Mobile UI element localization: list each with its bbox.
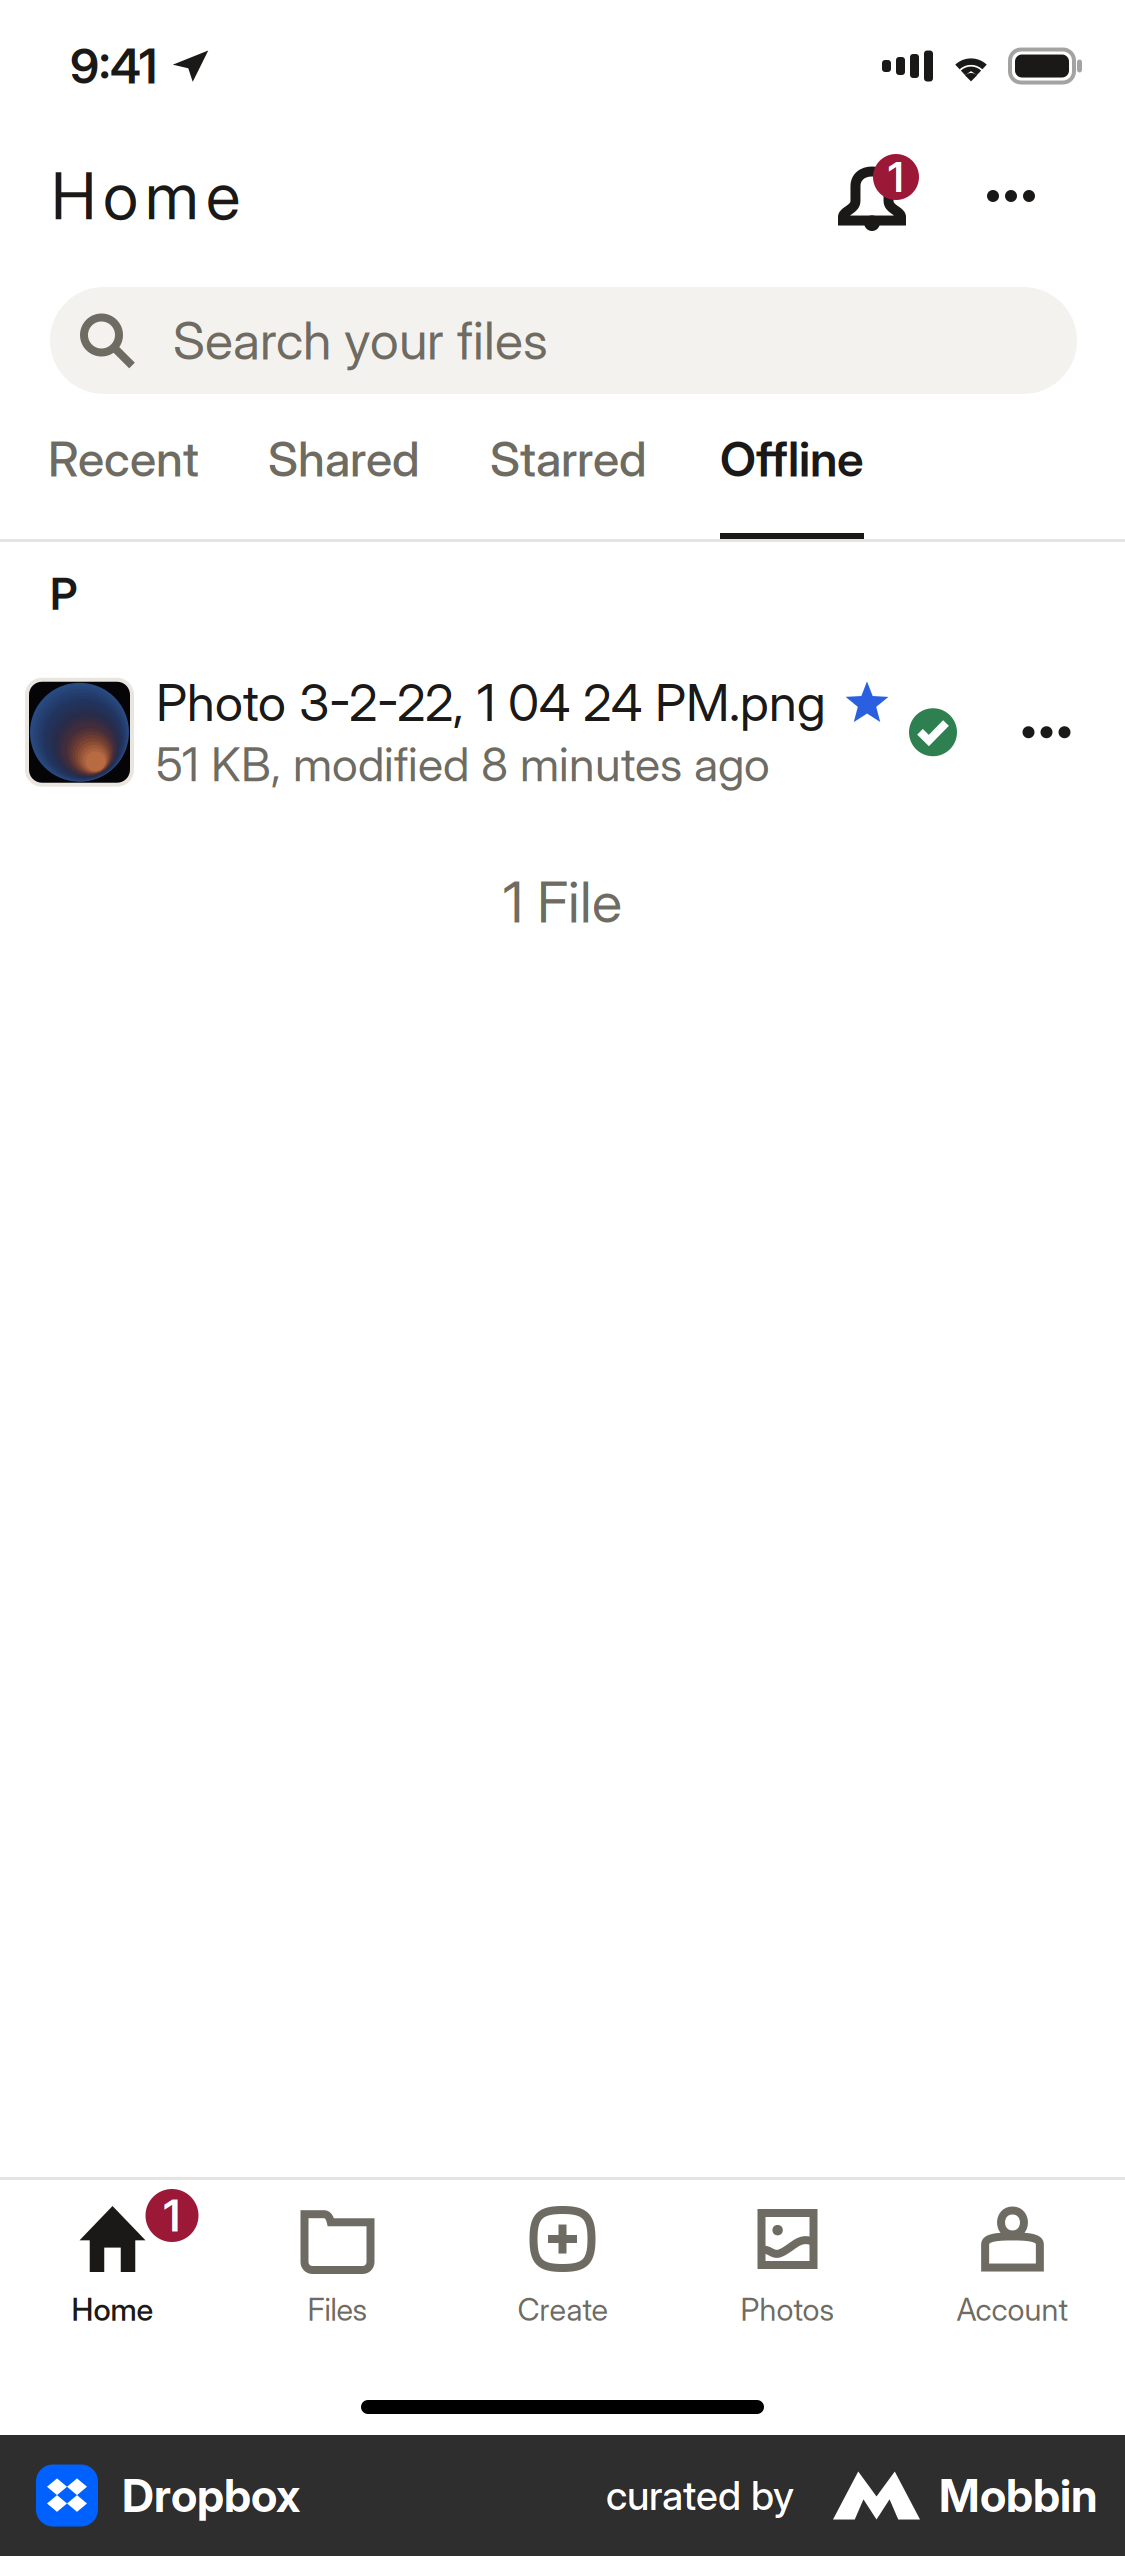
button[interactable]: Notifications [819,141,925,251]
staticText: Photos [740,2291,834,2328]
staticText: Home [71,2291,153,2328]
button[interactable]: Photo 3-2-22, 1 04 24 PM.png [0,670,1125,794]
staticText: 9:41 [70,37,157,95]
staticText: Dropbox [122,2468,300,2523]
staticText: Search your files [173,309,548,372]
staticText: 1 [163,2189,180,2242]
staticText: curated by [606,2471,794,2520]
staticText: 51 KB, modified 8 minutes ago [156,736,770,793]
staticText: Account [956,2291,1068,2328]
staticText: Offline [720,430,864,488]
button[interactable]: Files [225,2206,450,2328]
button[interactable]: Photos [675,2206,900,2328]
staticText: Create [517,2291,607,2328]
staticText: Shared [268,430,420,488]
staticText: 1 [888,152,904,202]
staticText: Files [307,2291,367,2328]
button[interactable]: More options [925,141,1097,251]
button[interactable]: Offline [720,430,864,539]
staticText: Home [51,157,240,235]
button[interactable]: Shared [268,430,420,539]
button[interactable]: Search your files [50,287,1077,394]
staticText: Photo 3-2-22, 1 04 24 PM.png [156,672,826,733]
staticText: Mobbin [939,2468,1098,2523]
button[interactable]: File options [976,676,1117,788]
button[interactable]: Create [450,2206,675,2328]
button[interactable]: Starred [490,430,647,539]
staticText: Starred [490,430,647,488]
button[interactable]: Account [900,2206,1125,2328]
staticText: 1 File [503,868,622,936]
button[interactable]: 1 [0,2206,225,2328]
staticText: P [50,567,78,620]
staticText: Recent [48,430,199,488]
button[interactable]: Recent [48,430,199,539]
